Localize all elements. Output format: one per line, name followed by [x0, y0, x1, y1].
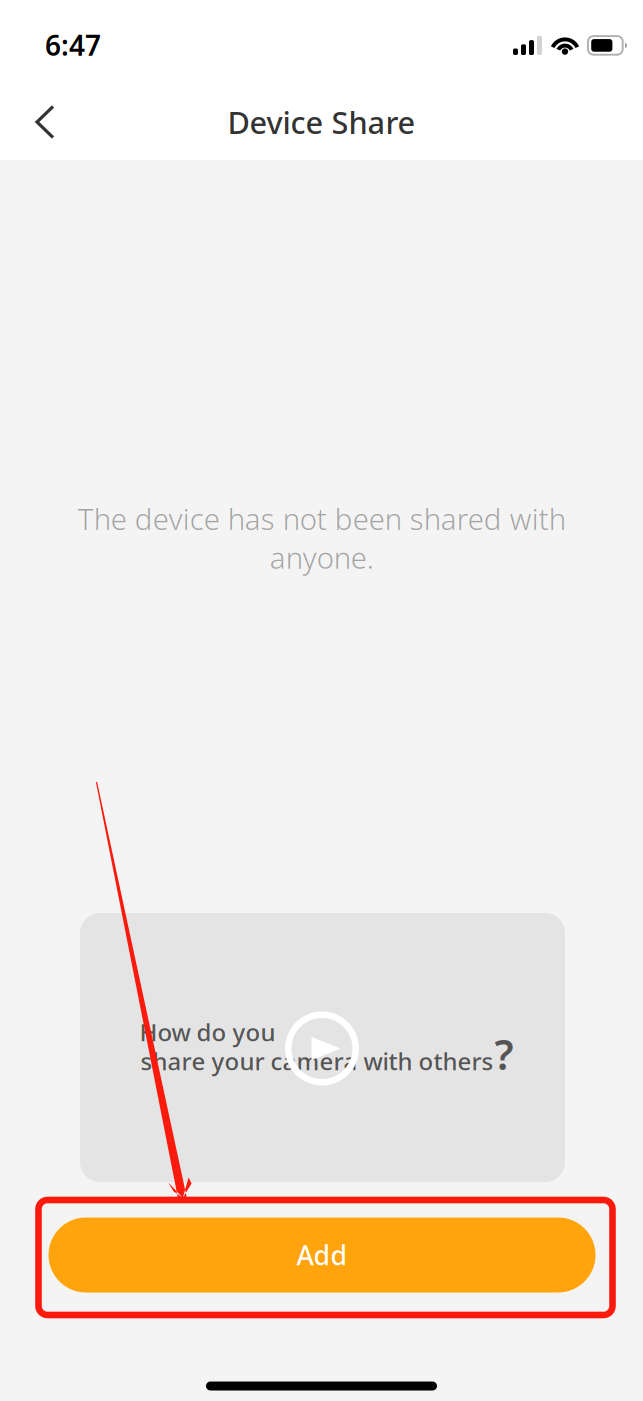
staticText: Device Share: [227, 102, 415, 142]
button[interactable]: How do you: [80, 913, 565, 1182]
staticText: share your camera with others: [140, 1045, 493, 1077]
staticText: The device has not been shared with anyo…: [77, 499, 565, 577]
staticText: How do you: [139, 1016, 275, 1048]
button[interactable]: Back: [14, 91, 76, 153]
staticText: ?: [494, 1027, 513, 1081]
staticText: 6:47: [45, 26, 101, 64]
button[interactable]: Add: [48, 1217, 595, 1292]
staticText: Add: [296, 1237, 347, 1273]
